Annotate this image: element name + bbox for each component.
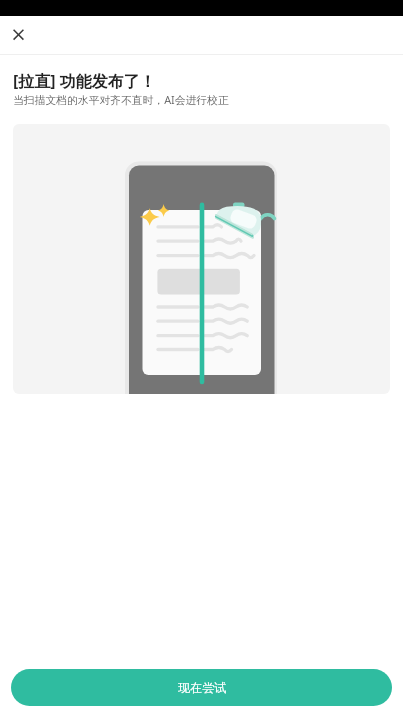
- button[interactable]: Close: [2, 18, 35, 51]
- staticText: 现在尝试: [178, 680, 226, 695]
- staticText: [拉直] 功能发布了！: [13, 70, 156, 92]
- staticText: 当扫描文档的水平对齐不直时，AI会进行校正: [13, 92, 229, 107]
- button[interactable]: 现在尝试: [11, 669, 392, 706]
